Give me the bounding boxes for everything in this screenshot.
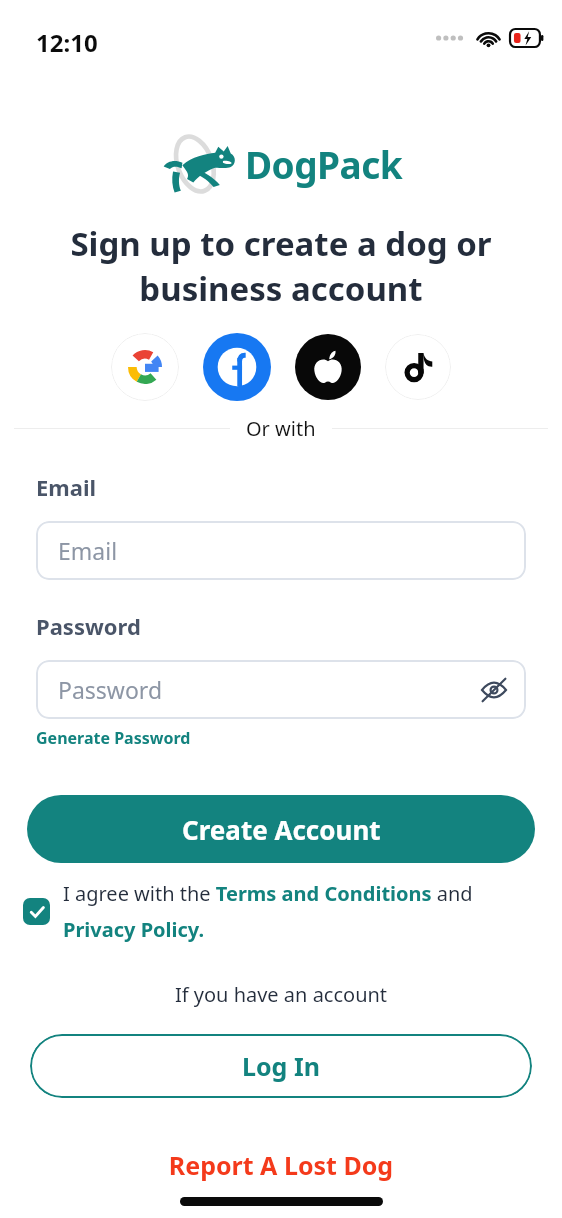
staticText: Log In bbox=[242, 1049, 320, 1083]
staticText: Generate Password bbox=[36, 727, 191, 749]
button[interactable]: I agree with the Terms and Conditions an… bbox=[63, 880, 544, 943]
staticText: I agree with the Terms and Conditions an… bbox=[63, 880, 544, 943]
staticText: 12:10 bbox=[36, 26, 98, 59]
button[interactable]: Password bbox=[36, 660, 526, 719]
button[interactable]: Sign up with TikTok bbox=[385, 334, 451, 400]
staticText: Password bbox=[58, 674, 163, 705]
button[interactable]: Generate Password bbox=[36, 727, 191, 749]
button[interactable]: Show password bbox=[476, 672, 512, 708]
button[interactable]: Log In bbox=[30, 1034, 532, 1098]
staticText: If you have an account bbox=[0, 981, 562, 1008]
button[interactable]: Report A Lost Dog bbox=[0, 1148, 562, 1182]
button[interactable]: Sign up with Apple bbox=[295, 334, 361, 400]
staticText: Email bbox=[58, 535, 118, 566]
staticText: Create Account bbox=[182, 812, 381, 847]
button[interactable]: Email bbox=[36, 521, 526, 580]
button[interactable]: Create Account bbox=[27, 795, 535, 863]
staticText: Email bbox=[36, 472, 97, 502]
staticText: Password bbox=[36, 611, 141, 641]
button[interactable]: Sign up with Facebook bbox=[203, 333, 271, 401]
staticText: Report A Lost Dog bbox=[0, 1148, 562, 1182]
button[interactable]: Agree to terms checkbox bbox=[23, 898, 50, 925]
staticText: Or with bbox=[246, 415, 316, 442]
staticText: Sign up to create a dog or business acco… bbox=[28, 221, 534, 311]
staticText: DogPack bbox=[245, 139, 403, 189]
button[interactable]: Sign up with Google bbox=[111, 333, 179, 401]
